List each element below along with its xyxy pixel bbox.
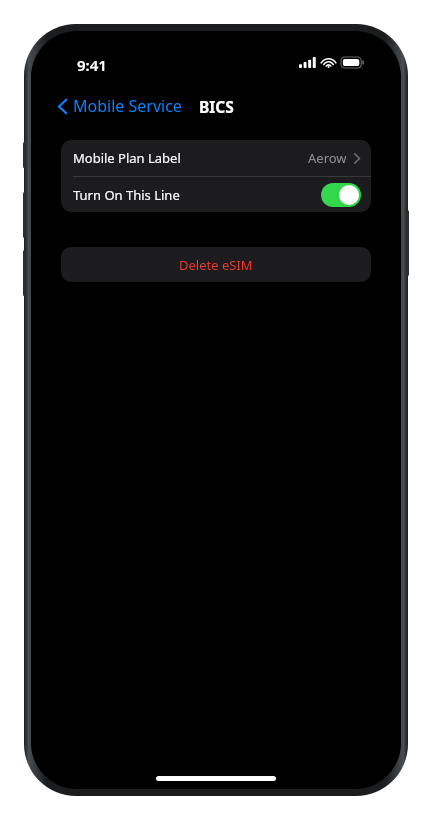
button[interactable]: Back	[55, 91, 185, 121]
staticText: Aerow	[308, 149, 347, 167]
staticText: BICS	[199, 96, 234, 117]
staticText: 9:41	[77, 55, 107, 75]
other: Wi-Fi	[321, 57, 336, 68]
staticText: Turn On This Line	[73, 186, 180, 204]
button[interactable]: Turn On This Line toggle	[321, 183, 361, 207]
staticText: Delete eSIM	[179, 256, 253, 274]
other: Back	[58, 98, 67, 115]
other: Cellular signal	[299, 57, 316, 68]
button[interactable]: Mobile Plan Label	[61, 140, 371, 176]
button[interactable]: Turn On This Line	[61, 177, 371, 212]
other: Battery	[341, 57, 364, 68]
button[interactable]: Delete eSIM	[61, 247, 371, 282]
staticText: Mobile Service	[73, 95, 182, 117]
staticText: Mobile Plan Label	[73, 149, 181, 167]
